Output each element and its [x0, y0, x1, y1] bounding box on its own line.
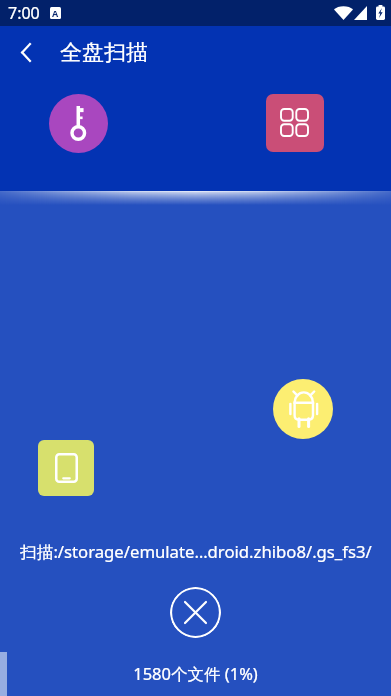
button[interactable]: Key files [49, 94, 108, 153]
button[interactable]: Cancel scan [170, 587, 221, 638]
staticText: 1580个文件 (1%) [133, 662, 258, 685]
staticText: 7:00 [8, 2, 40, 24]
staticText: A [52, 7, 59, 19]
staticText: 扫描:/storage/emulate…droid.zhibo8/.gs_fs3… [20, 540, 372, 563]
button[interactable]: Device files [38, 440, 94, 496]
button[interactable]: Apps [266, 94, 324, 152]
button[interactable]: Android files [273, 379, 333, 439]
button[interactable]: Back [6, 32, 46, 72]
staticText: 全盘扫描 [60, 39, 148, 67]
